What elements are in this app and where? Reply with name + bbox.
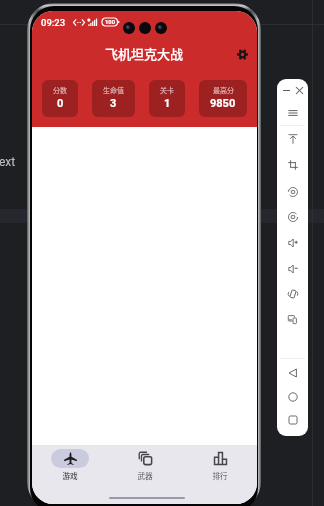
button[interactable]: 武器 (107, 445, 182, 481)
button[interactable]: Rotate right (284, 208, 301, 225)
button[interactable]: Volume up (284, 234, 301, 251)
staticText: 0 (57, 97, 64, 110)
staticText: 最高分 (213, 85, 234, 95)
button[interactable]: Home (284, 388, 301, 405)
button[interactable]: Close (293, 84, 306, 97)
button[interactable]: Power (284, 130, 301, 147)
staticText: 游戏 (62, 470, 78, 481)
button[interactable]: Settings (232, 44, 252, 64)
button[interactable]: Volume down (284, 260, 301, 277)
staticText: 09:23 (41, 17, 66, 28)
button[interactable]: Minimize (280, 84, 293, 97)
button[interactable]: Fold device (284, 285, 301, 302)
button[interactable]: Menu (284, 104, 301, 121)
button[interactable]: 分数 (42, 80, 78, 117)
button[interactable]: 排行 (182, 445, 257, 481)
staticText: 武器 (137, 470, 153, 481)
staticText: 生命值 (103, 85, 124, 95)
staticText: 关卡 (160, 85, 174, 95)
staticText: 飞机坦克大战 (105, 44, 184, 63)
button[interactable]: Multi window (284, 310, 301, 327)
staticText: 100 (104, 19, 116, 26)
staticText: 分数 (53, 85, 67, 95)
button[interactable]: Screenshot (284, 156, 301, 173)
button[interactable]: 关卡 (149, 80, 185, 117)
staticText: 排行 (212, 470, 228, 481)
button[interactable]: 游戏 (32, 445, 107, 481)
staticText: text (0, 155, 16, 169)
button[interactable]: Rotate left (284, 183, 301, 200)
button[interactable]: 生命值 (92, 80, 135, 117)
staticText: 1 (164, 97, 171, 110)
button[interactable]: Back (284, 364, 301, 381)
button[interactable]: Recents (284, 411, 301, 428)
staticText: 9850 (210, 97, 236, 110)
staticText: 3 (110, 97, 117, 110)
button[interactable]: 最高分 (199, 80, 247, 117)
